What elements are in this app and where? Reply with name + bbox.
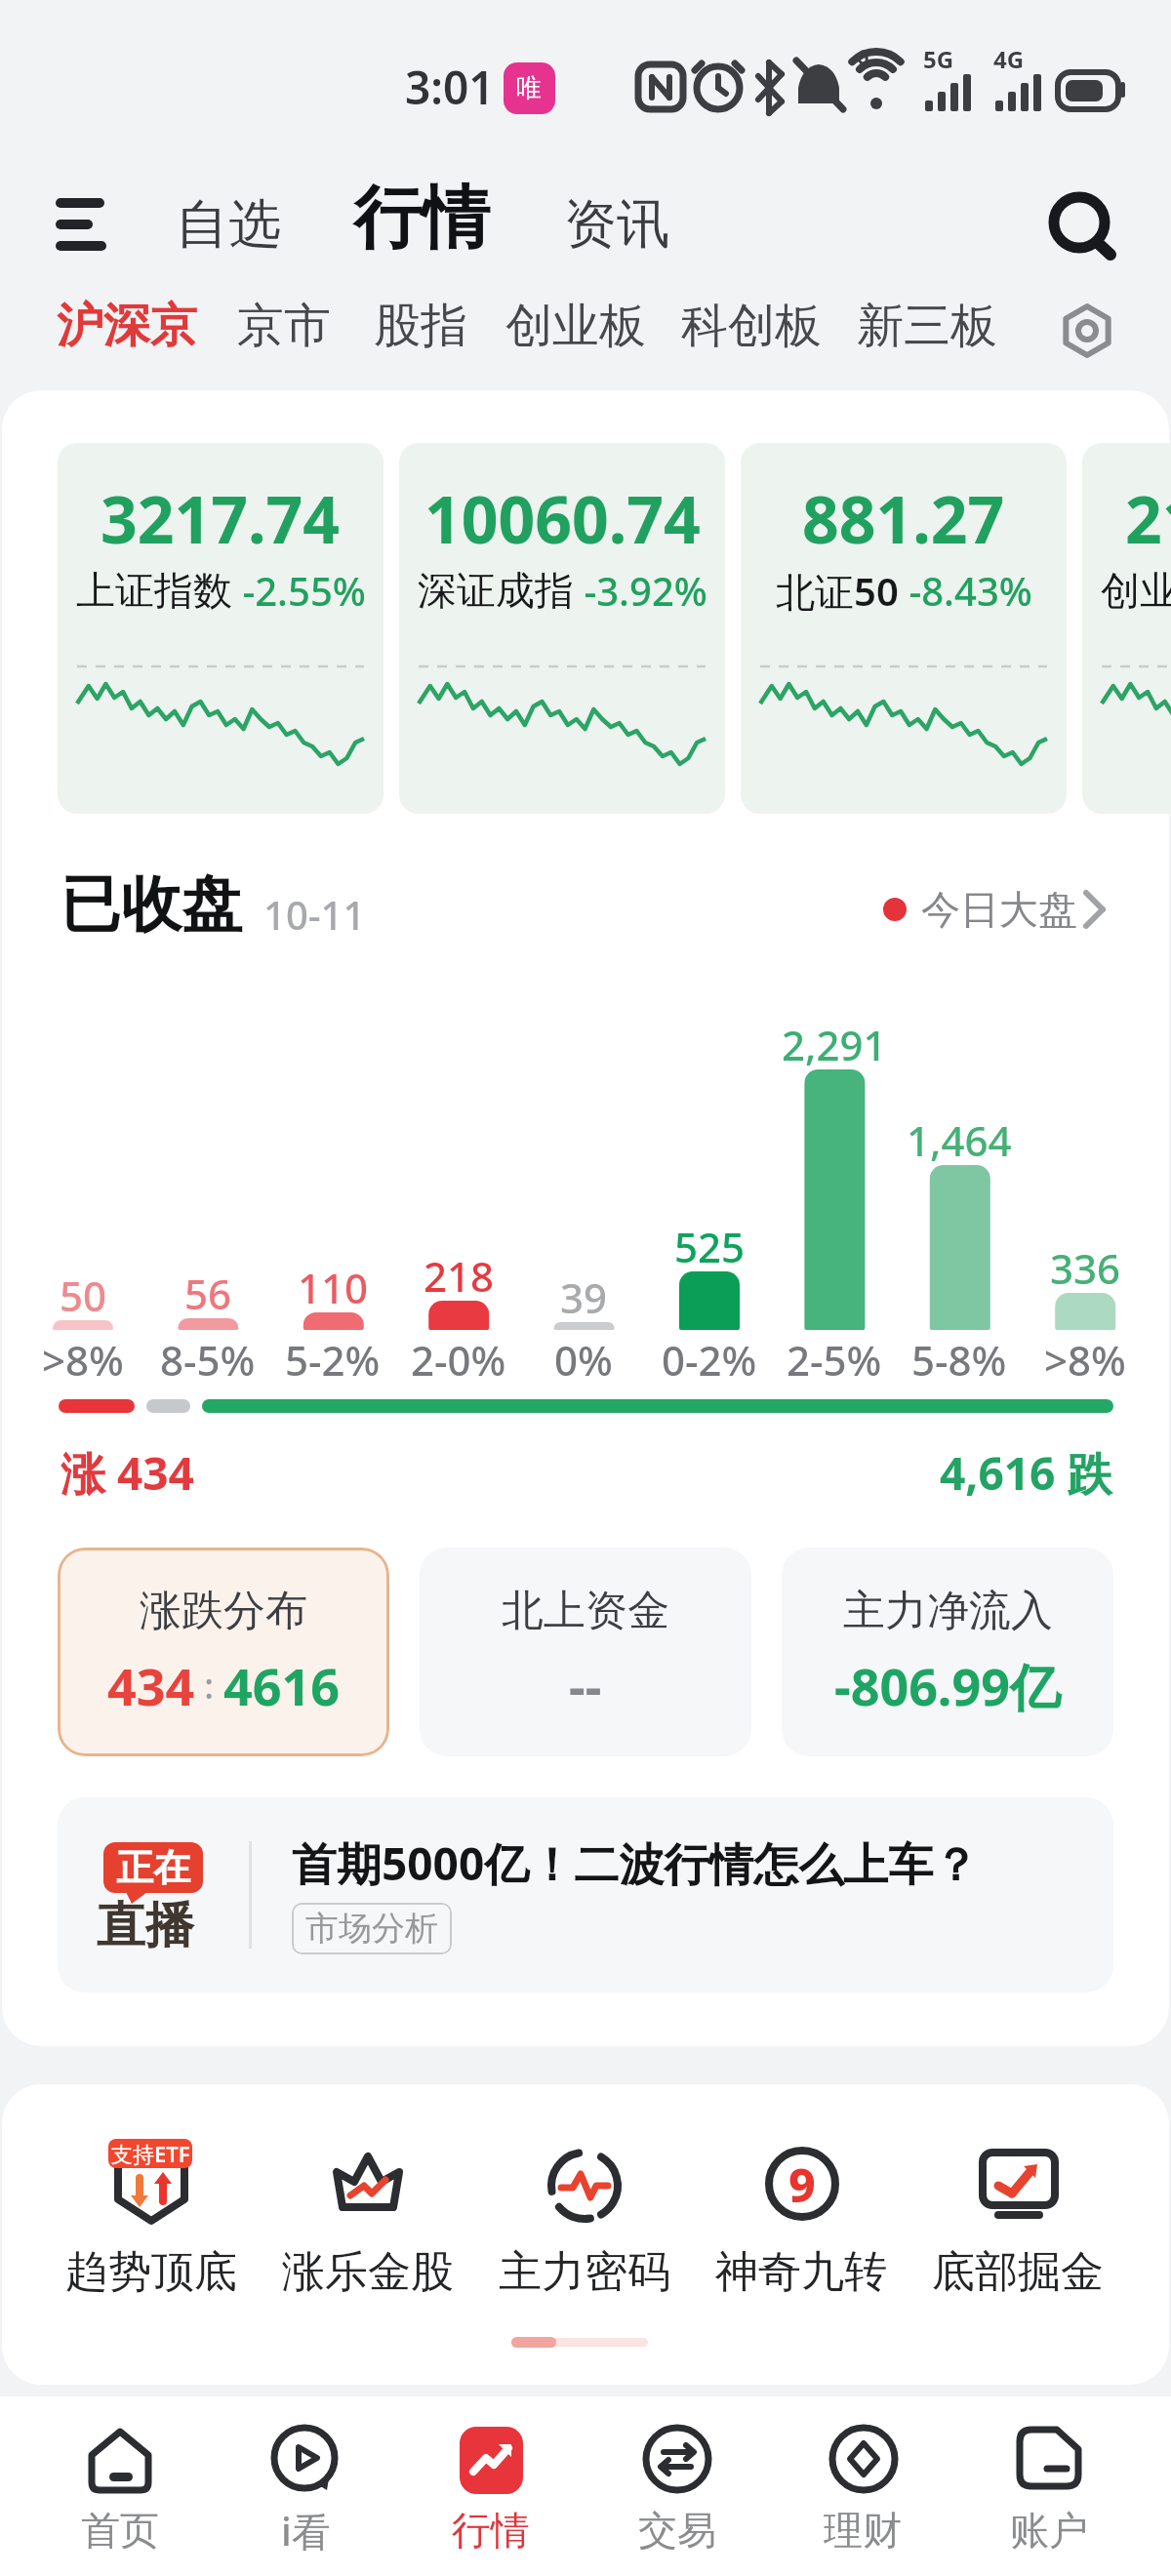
staticText: 3217.74 (101, 474, 341, 562)
staticText: 底部掘金 (932, 2245, 1104, 2299)
staticText: 2,291 (782, 1017, 887, 1072)
button[interactable]: 今日大盘 (859, 873, 1132, 946)
staticText: 支持ETF (111, 2139, 190, 2168)
staticText: -8.43% (899, 564, 1032, 617)
button[interactable] (1060, 302, 1118, 361)
staticText: 涨 434 (61, 1442, 194, 1504)
staticText: 110 (298, 1260, 369, 1315)
staticText: 沪深京 (57, 297, 197, 355)
staticText: 6 (857, 41, 869, 70)
staticText: >8% (1044, 1332, 1126, 1388)
button[interactable] (270, 2108, 465, 2322)
button[interactable] (1034, 180, 1132, 277)
button[interactable]: 科创板 (681, 297, 822, 355)
staticText: 今日大盘 (921, 885, 1077, 934)
staticText: -2.55% (232, 564, 366, 617)
staticText: 唯 (516, 72, 542, 104)
staticText: 525 (674, 1219, 746, 1274)
staticText: 5-8% (911, 1332, 1007, 1388)
staticText: 1,464 (907, 1112, 1012, 1168)
staticText: 5-2% (285, 1332, 381, 1388)
button[interactable]: 3217.74 (58, 443, 384, 814)
staticText: 2164.39 (1125, 474, 1171, 562)
staticText: i看 (281, 2504, 331, 2557)
staticText: 账户 (1010, 2506, 1088, 2555)
button[interactable]: 881.27 (741, 443, 1067, 814)
button[interactable] (785, 2400, 941, 2566)
staticText: 涨跌分布 (140, 1585, 307, 1637)
staticText: 4G (993, 43, 1025, 75)
staticText: 北证50 (776, 564, 899, 618)
staticText: 股指 (374, 297, 467, 355)
button[interactable] (43, 185, 117, 267)
button[interactable] (413, 2400, 569, 2566)
staticText: 0-2% (662, 1332, 757, 1388)
button[interactable]: 2164.39 (1082, 443, 1171, 814)
staticText: 资讯 (564, 191, 669, 258)
staticText: 行情 (452, 2506, 530, 2555)
button[interactable]: 自选 (176, 191, 281, 258)
staticText: 正在 (116, 1844, 190, 1891)
staticText: 京市 (237, 297, 331, 355)
staticText: 首期5000亿！二波行情怎么上车？ (292, 1832, 979, 1894)
staticText: 3:01 (405, 57, 495, 118)
staticText: 已收盘 (61, 866, 242, 943)
button[interactable]: 股指 (374, 297, 467, 355)
button[interactable] (971, 2400, 1127, 2566)
staticText: -3.92% (574, 564, 707, 617)
button[interactable] (54, 2108, 249, 2322)
button[interactable]: 京市 (237, 297, 331, 355)
staticText: 新三板 (857, 297, 997, 355)
staticText: 8-5% (160, 1332, 256, 1388)
staticText: 首页 (81, 2506, 159, 2555)
staticText: 2-5% (787, 1332, 882, 1388)
staticText: 创业板 (505, 297, 646, 355)
staticText: 交易 (638, 2506, 716, 2555)
button[interactable]: 沪深京 (57, 297, 197, 355)
staticText: 0% (554, 1332, 613, 1388)
button[interactable] (920, 2108, 1115, 2322)
staticText: 336 (1050, 1240, 1121, 1296)
staticText: 直播 (97, 1895, 194, 1956)
button[interactable] (599, 2400, 755, 2566)
staticText: -- (569, 1651, 602, 1720)
staticText: 主力密码 (499, 2245, 670, 2299)
staticText: 自选 (176, 191, 281, 258)
staticText: 涨乐金股 (282, 2245, 454, 2299)
button[interactable]: 主力净流入 (782, 1548, 1113, 1756)
staticText: 56 (184, 1266, 232, 1321)
staticText: 39 (560, 1269, 608, 1325)
staticText: >8% (42, 1332, 124, 1388)
button[interactable]: 正在 (58, 1797, 1113, 1992)
staticText: 市场分析 (305, 1908, 438, 1950)
button[interactable]: 创业板 (505, 297, 646, 355)
button[interactable] (227, 2400, 384, 2566)
button[interactable]: 行情 (353, 176, 490, 262)
button[interactable]: 资讯 (564, 191, 669, 258)
staticText: 深证成指 (418, 566, 574, 615)
staticText: 434 (107, 1651, 195, 1720)
staticText: 行情 (353, 176, 490, 262)
button[interactable]: 新三板 (857, 297, 997, 355)
button[interactable] (704, 2108, 899, 2322)
staticText: 4,616 跌 (940, 1442, 1112, 1504)
staticText: -806.99亿 (834, 1651, 1061, 1720)
staticText: 2-0% (411, 1332, 506, 1388)
button[interactable] (487, 2108, 682, 2322)
button[interactable]: 涨跌分布 (58, 1548, 389, 1756)
staticText: 9 (788, 2153, 816, 2216)
staticText: 主力净流入 (843, 1585, 1053, 1637)
staticText: : (195, 1662, 223, 1710)
staticText: 上证指数 (76, 566, 232, 615)
button[interactable] (42, 2400, 198, 2566)
staticText: 科创板 (681, 297, 822, 355)
button[interactable]: 10060.74 (399, 443, 725, 814)
staticText: 北上资金 (502, 1585, 669, 1637)
staticText: 神奇九转 (715, 2245, 887, 2299)
staticText: 理财 (824, 2506, 902, 2555)
staticText: 10060.74 (424, 474, 701, 562)
staticText: 50 (60, 1268, 107, 1323)
staticText: 881.27 (802, 474, 1005, 562)
staticText: 218 (424, 1248, 495, 1304)
button[interactable]: 北上资金 (420, 1548, 751, 1756)
